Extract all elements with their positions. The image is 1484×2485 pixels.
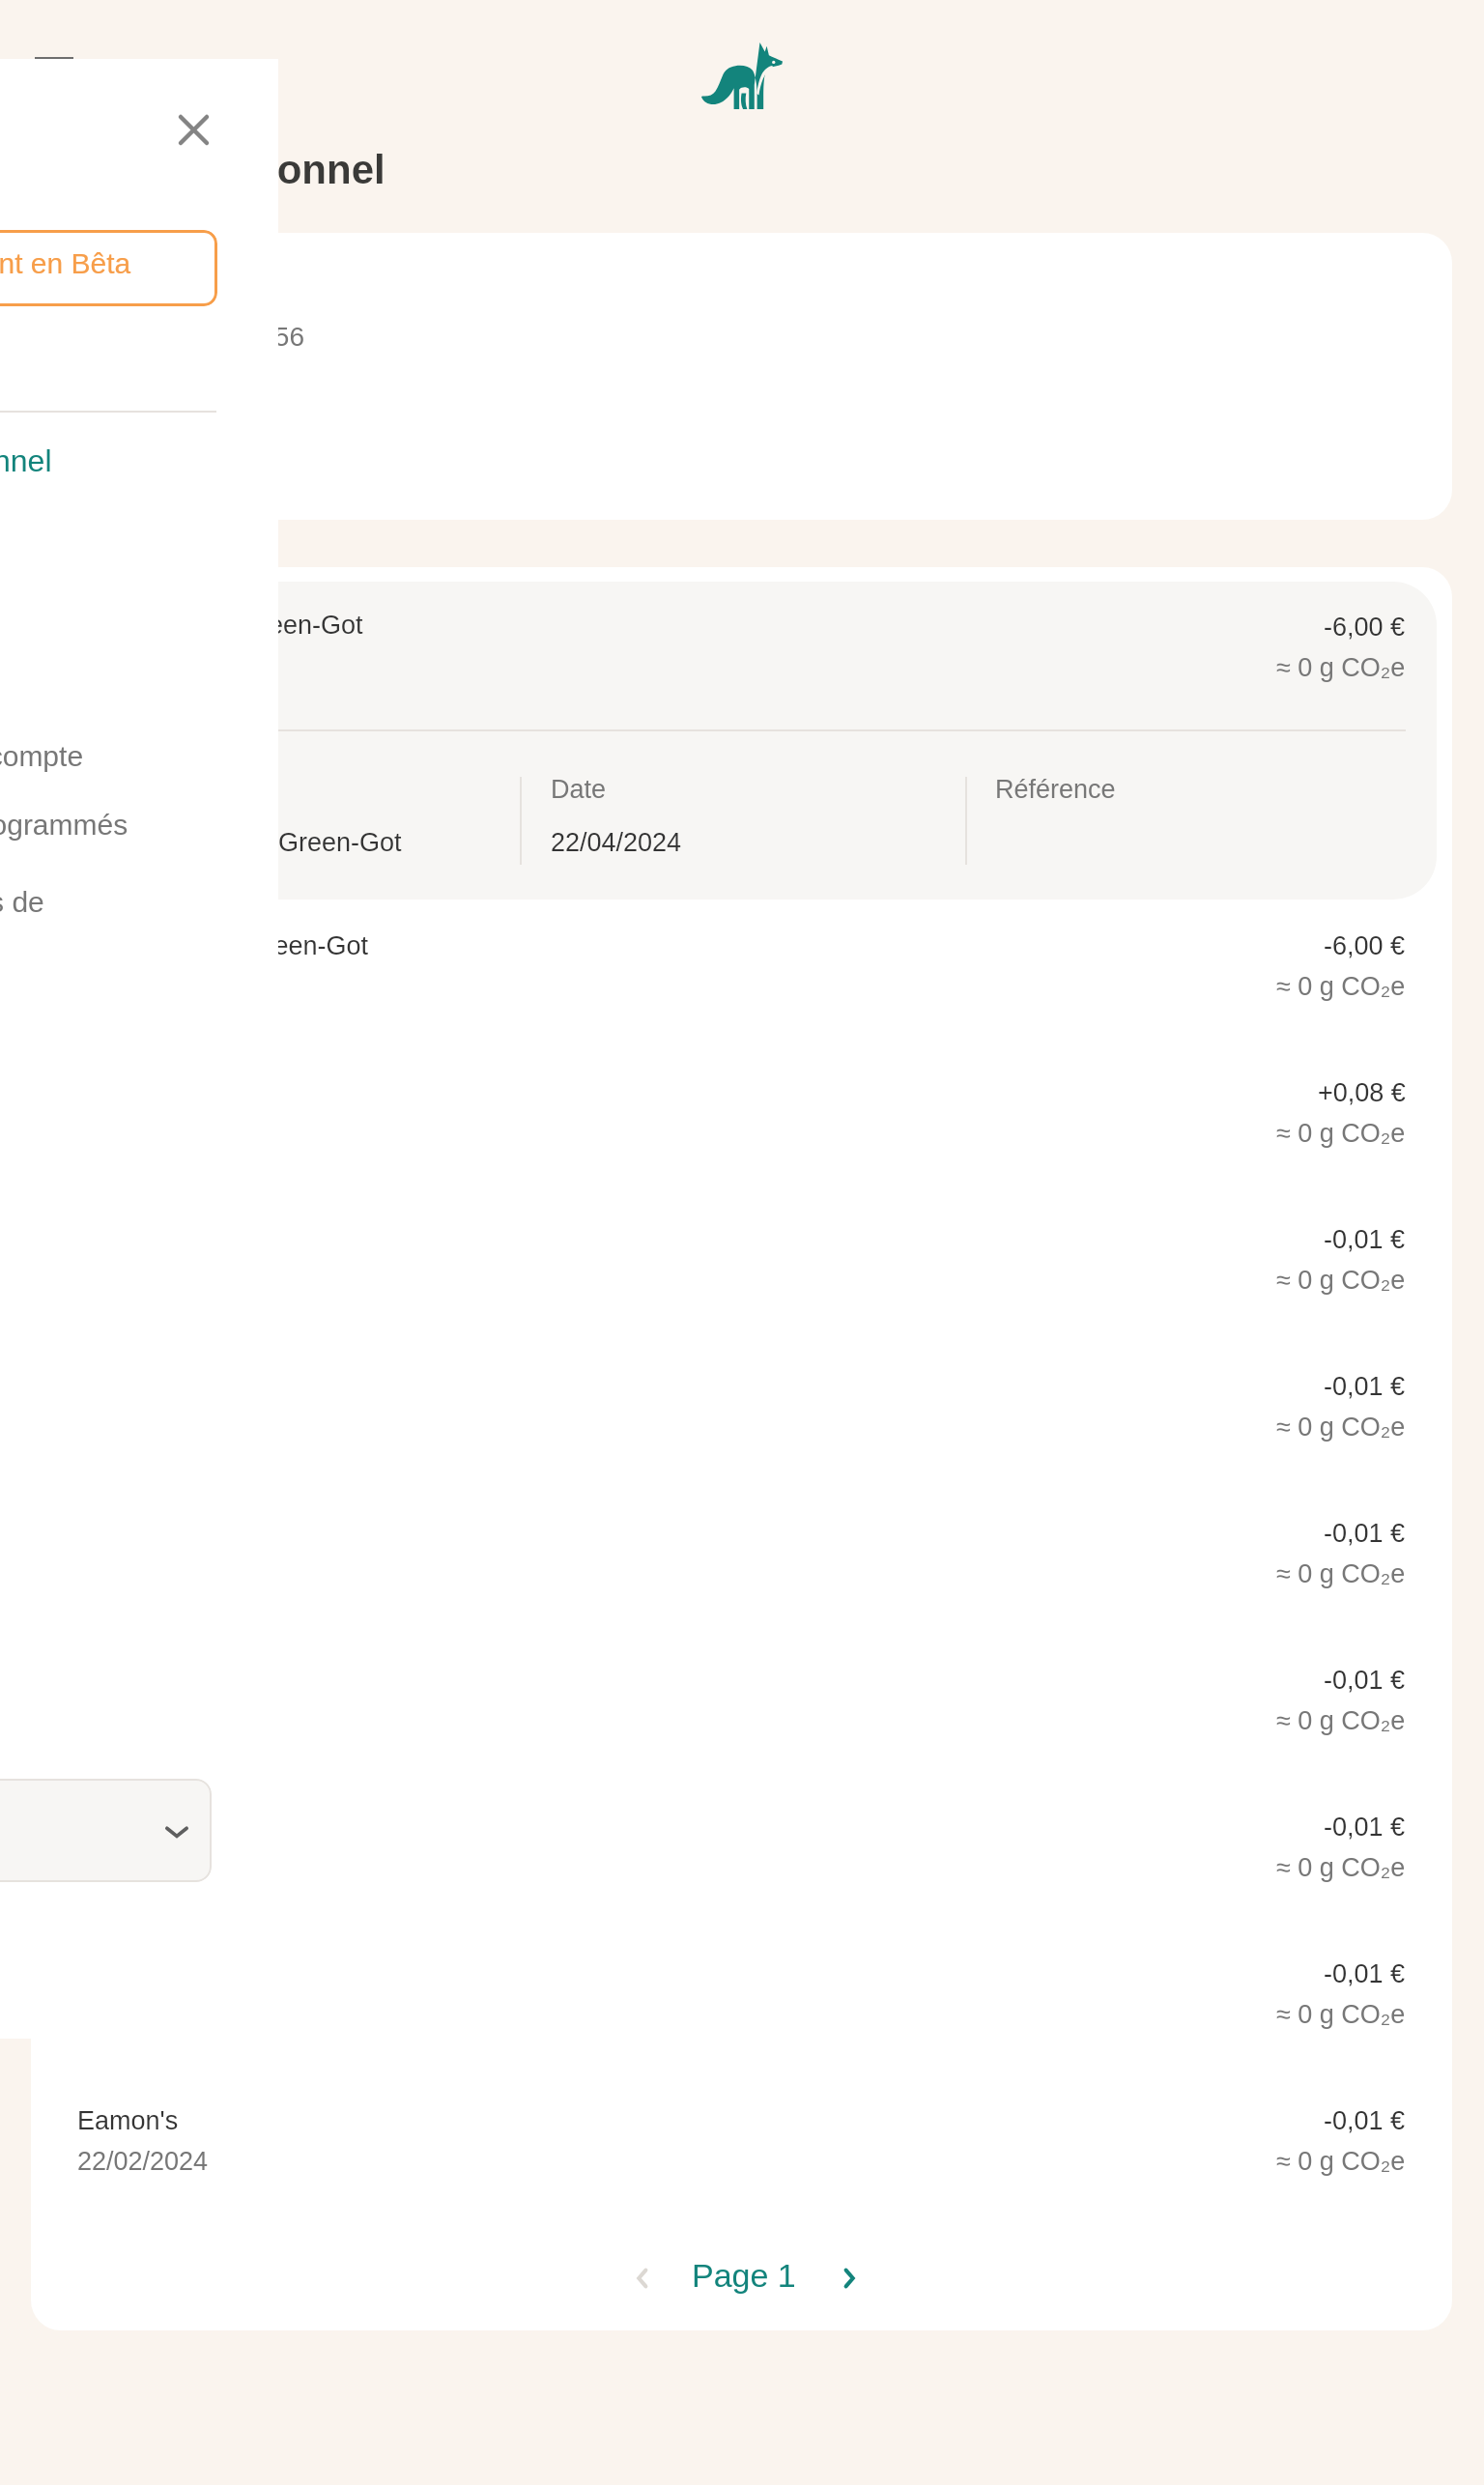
staticText: -6,00 € [1324,931,1406,960]
button[interactable]: Eamon's [31,1198,1452,1345]
staticText: -0,01 € [1324,1666,1406,1695]
button[interactable]: Compte personnel [0,443,52,478]
staticText: Date [551,775,607,804]
staticText: Virement Green-Got [128,611,363,640]
button[interactable]: Eamon's [31,2079,1452,2226]
button[interactable]: Virement en Bêta [0,247,131,280]
staticText: -6,00 € [1324,613,1406,642]
staticText: ≈ 0 g CO₂e [1276,2147,1406,2176]
staticText: Eamon's [77,2106,179,2135]
button[interactable]: Intérêts [31,1051,1452,1198]
staticText: Compte personnel [29,147,385,192]
staticText: 22/04/2024 [551,828,682,857]
button[interactable]: Virement Green-Got [46,582,1437,900]
button[interactable]: Virement vers Green-Got [31,904,1452,1051]
button[interactable]: Menu [35,57,73,100]
button[interactable]: Virements programmés [0,809,128,842]
staticText: -0,01 € [1324,1372,1406,1401]
button[interactable]: Eamon's [31,1345,1452,1492]
staticText: Eamon's [77,1813,179,1842]
button[interactable]: Next page [813,2243,883,2313]
button[interactable]: Previous page [609,2243,678,2313]
staticText: IBAN · FR76 3000 1007 9412 3456 [31,322,304,352]
button[interactable] [0,230,217,306]
staticText: Référence [995,775,1116,804]
button[interactable]: Eamon's [31,1785,1452,1932]
staticText: ≈ 0 g CO₂e [1276,1266,1406,1295]
button[interactable]: Eamon's [31,1932,1452,2079]
button[interactable] [0,1779,212,1882]
button[interactable]: Demandes de [0,886,44,919]
staticText: +0,08 € [1318,1078,1406,1107]
staticText: -0,01 € [1324,2106,1406,2135]
staticText: -0,01 € [1324,1959,1406,1988]
staticText: 22/02/2024 [77,2147,209,2176]
button[interactable]: Close menu [166,102,220,157]
staticText: ≈ 0 g CO₂e [1276,1119,1406,1148]
staticText: ≈ 0 g CO₂e [1276,972,1406,1001]
staticText: ≈ 0 g CO₂e [1276,1853,1406,1882]
staticText: Virement vers Green-Got [77,931,369,960]
staticText: -0,01 € [1324,1225,1406,1254]
staticText: 12/03/2024 [77,1853,209,1882]
button[interactable]: Eamon's [31,1492,1452,1639]
staticText: ≈ 0 g CO₂e [1276,1413,1406,1442]
staticText: ≈ 0 g CO₂e [1276,653,1406,682]
staticText: ≈ 0 g CO₂e [1276,1706,1406,1735]
staticText: Green-Got [278,828,402,857]
staticText: ≈ 0 g CO₂e [1276,1559,1406,1588]
button[interactable]: Mon compte [0,740,84,773]
staticText: Page 1 [692,2257,796,2294]
button[interactable]: Page 1 [682,2241,806,2310]
staticText: -0,01 € [1324,1813,1406,1842]
staticText: -0,01 € [1324,1519,1406,1548]
staticText: ≈ 0 g CO₂e [1276,2000,1406,2029]
button[interactable]: Eamon's [31,1639,1452,1785]
